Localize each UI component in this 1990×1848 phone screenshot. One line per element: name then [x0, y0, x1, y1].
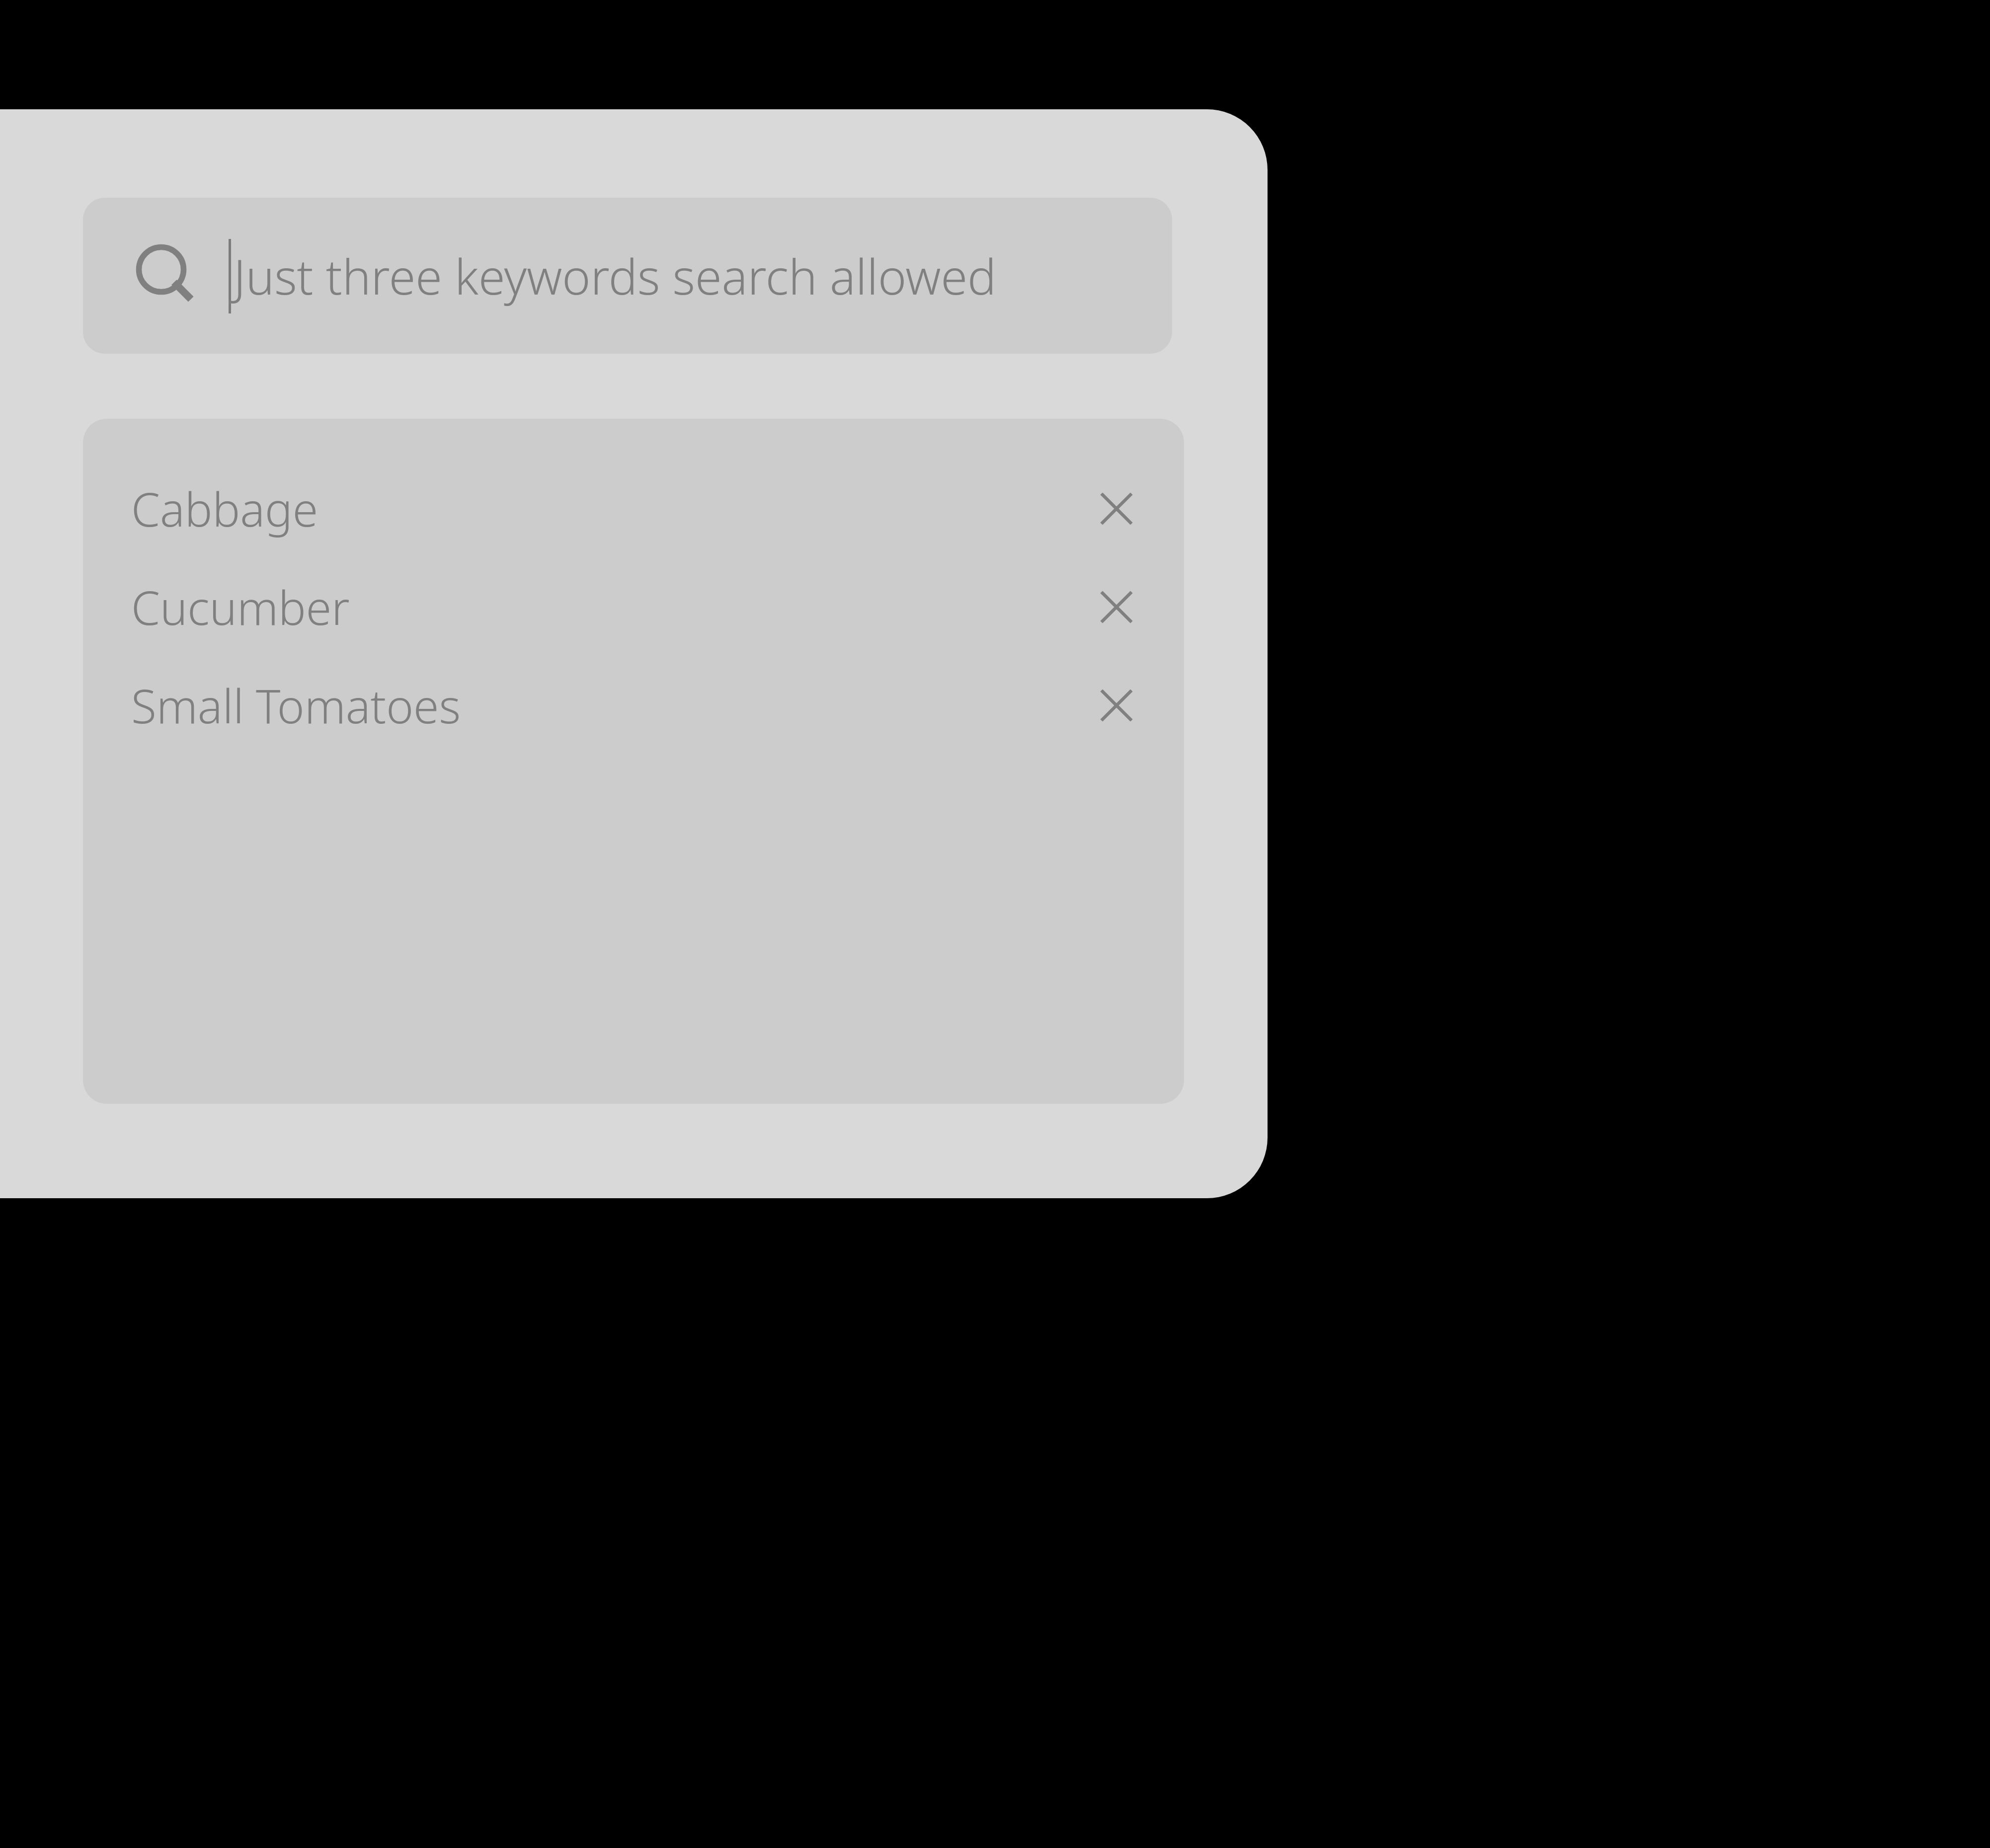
button[interactable]: Search [83, 198, 1172, 354]
button[interactable]: Remove Cabbage [1087, 479, 1146, 539]
button[interactable] [83, 658, 1184, 753]
button[interactable] [83, 560, 1184, 654]
staticText: Cucumber [131, 576, 350, 639]
button[interactable] [83, 462, 1184, 556]
button[interactable]: Remove Small Tomatoes [1087, 676, 1146, 735]
staticText: Just three keywords search allowed here.… [234, 243, 1172, 308]
button[interactable]: Remove Cucumber [1087, 577, 1146, 637]
staticText: Cabbage [131, 477, 318, 540]
staticText: Small Tomatoes [131, 674, 461, 737]
